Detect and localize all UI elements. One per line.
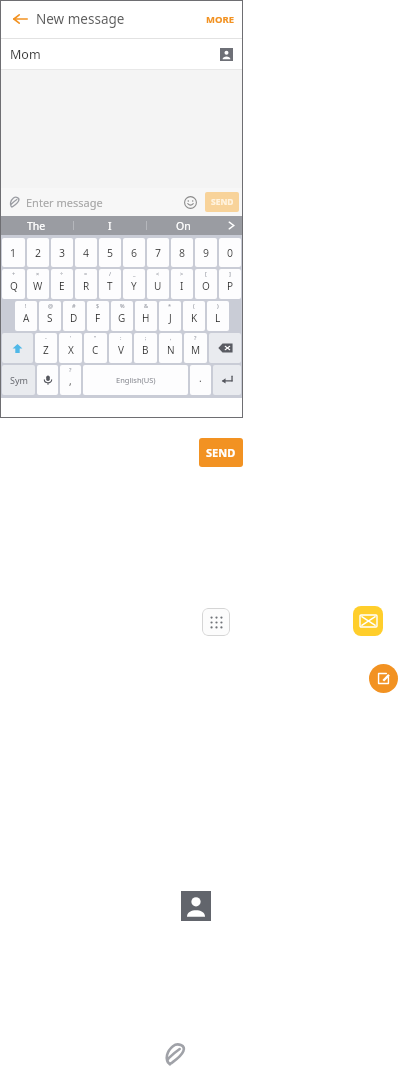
button[interactable]: ( (183, 301, 205, 331)
staticText: $ (96, 302, 100, 309)
button[interactable]: > (171, 269, 193, 299)
staticText: 7 (155, 246, 162, 260)
staticText: Y (131, 279, 137, 293)
button[interactable]: New message (369, 664, 398, 693)
button[interactable]: % (111, 301, 133, 331)
button[interactable]: , (159, 333, 182, 363)
staticText: F (95, 311, 101, 325)
button[interactable]: @ (39, 301, 61, 331)
button[interactable]: Attach (4, 192, 24, 212)
staticText: 8 (179, 246, 186, 260)
button[interactable]: 0 (219, 238, 241, 267)
staticText: D (70, 311, 78, 325)
button[interactable]: English(US) (83, 365, 188, 395)
button[interactable]: ; (134, 333, 157, 363)
button[interactable]: More suggestions (219, 216, 243, 235)
button[interactable]: MORE (204, 9, 237, 30)
button[interactable]: < (147, 269, 169, 299)
button[interactable]: 4 (75, 238, 97, 267)
button[interactable]: Add recipient from contacts (220, 48, 233, 61)
button[interactable]: 7 (147, 238, 169, 267)
staticText: A (23, 311, 30, 325)
button[interactable]: 3 (51, 238, 73, 267)
button[interactable]: * (159, 301, 181, 331)
button[interactable]: 2 (27, 238, 49, 267)
staticText: ' (70, 334, 72, 341)
staticText: ? (69, 366, 72, 373)
button[interactable]: : (109, 333, 132, 363)
button[interactable]: Apps (202, 608, 230, 636)
staticText: . (199, 371, 202, 385)
button[interactable]: - (35, 333, 57, 363)
staticText: C (92, 343, 99, 357)
button[interactable]: 5 (99, 238, 121, 267)
staticText: I (180, 279, 184, 293)
button[interactable]: Shift (2, 333, 33, 363)
button[interactable]: # (63, 301, 85, 331)
staticText: T (107, 279, 113, 293)
button[interactable]: Sym (2, 365, 35, 395)
button[interactable]: 6 (123, 238, 145, 267)
button[interactable]: " (84, 333, 107, 363)
button[interactable]: = (75, 269, 97, 299)
staticText: SEND (211, 196, 234, 208)
button[interactable]: 8 (171, 238, 193, 267)
staticText: I (108, 219, 112, 233)
staticText: + (12, 270, 16, 277)
staticText: Q (10, 279, 18, 293)
button[interactable]: ) (207, 301, 229, 331)
staticText: B (142, 343, 149, 357)
button[interactable]: On (147, 216, 219, 235)
staticText: ÷ (60, 270, 64, 277)
button[interactable]: Mom (0, 39, 243, 69)
button[interactable]: ? (184, 333, 207, 363)
staticText: Mom (10, 46, 41, 63)
button[interactable]: ' (59, 333, 82, 363)
staticText: : (120, 334, 122, 341)
staticText: 9 (203, 246, 210, 260)
button[interactable]: Backspace (209, 333, 241, 363)
staticText: 3 (59, 246, 66, 260)
staticText: 2 (35, 246, 42, 260)
button[interactable]: Voice input (37, 365, 58, 395)
staticText: M (191, 343, 201, 357)
staticText: ( (193, 302, 195, 309)
staticText: SEND (206, 445, 236, 460)
button[interactable]: Emoji (181, 193, 199, 211)
button[interactable]: SEND (205, 192, 239, 212)
button[interactable]: $ (87, 301, 109, 331)
button[interactable]: Attach (158, 1038, 192, 1072)
button[interactable]: & (135, 301, 157, 331)
staticText: > (180, 270, 184, 277)
button[interactable]: ] (219, 269, 241, 299)
staticText: K (191, 311, 198, 325)
button[interactable]: I (74, 216, 146, 235)
button[interactable]: 9 (195, 238, 217, 267)
staticText: - (45, 334, 47, 341)
staticText: ! (25, 302, 27, 309)
button[interactable]: Back (6, 5, 34, 33)
button[interactable]: _ (123, 269, 145, 299)
button[interactable]: [ (195, 269, 217, 299)
staticText: _ (133, 270, 136, 277)
button[interactable]: 1 (2, 238, 25, 267)
staticText: 1 (10, 246, 17, 260)
button[interactable]: . (190, 365, 211, 395)
button[interactable]: / (99, 269, 121, 299)
staticText: Z (43, 343, 49, 357)
button[interactable]: × (27, 269, 49, 299)
button[interactable]: The (0, 216, 73, 235)
button[interactable]: ÷ (51, 269, 73, 299)
staticText: N (167, 343, 175, 357)
button[interactable]: ? (60, 365, 81, 395)
button[interactable]: Contacts (181, 891, 211, 921)
button[interactable]: Messages (353, 606, 383, 636)
button[interactable]: Enter (213, 365, 241, 395)
button[interactable]: SEND (199, 438, 243, 467)
button[interactable]: ! (15, 301, 37, 331)
staticText: & (144, 302, 149, 309)
staticText: Enter message (26, 195, 103, 210)
staticText: ; (145, 334, 147, 341)
staticText: O (202, 279, 210, 293)
button[interactable]: + (2, 269, 25, 299)
